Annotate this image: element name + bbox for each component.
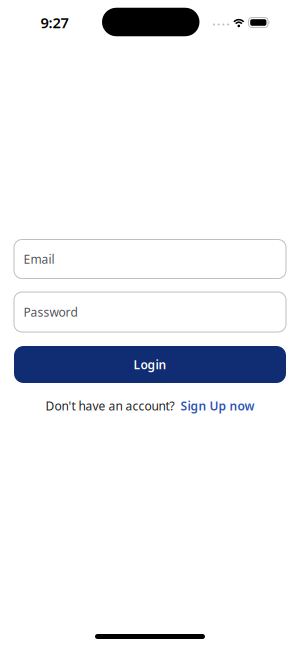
button[interactable]: Sign Up now [180, 398, 254, 414]
staticText: 9:27 [40, 13, 68, 32]
staticText: Login [133, 356, 166, 372]
staticText: Don't have an account? [45, 398, 174, 414]
staticText: Email [23, 251, 54, 267]
staticText: Sign Up now [180, 398, 254, 414]
button[interactable]: Email [14, 239, 286, 278]
button[interactable]: Login [14, 346, 286, 383]
staticText: Password [23, 304, 77, 320]
button[interactable]: Password [14, 292, 286, 332]
